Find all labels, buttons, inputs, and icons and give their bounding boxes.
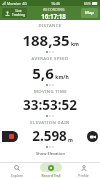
staticText: ELEVATION GAIN [30, 120, 70, 126]
staticText: 4G [22, 1, 27, 6]
button[interactable]: Profile [67, 163, 100, 178]
staticText: 16:17:18 [41, 12, 66, 20]
staticText: 5,6 [32, 63, 54, 83]
staticText: m [68, 137, 73, 144]
button[interactable]: Take photo [87, 131, 98, 142]
button[interactable]: Map [81, 8, 98, 18]
staticText: Tracking [12, 13, 25, 17]
staticText: Live [15, 9, 22, 13]
staticText: Record Trail [41, 173, 61, 178]
staticText: km [71, 41, 79, 48]
staticText: AVERAGE SPEED [31, 56, 69, 62]
staticText: Explore [11, 173, 23, 178]
button[interactable]: Show Elevation [34, 150, 67, 157]
staticText: RECORDING [43, 7, 65, 12]
button[interactable]: Stop recording [2, 131, 18, 142]
button[interactable]: Live [2, 8, 27, 18]
staticText: Profile [78, 173, 89, 178]
staticText: km/h [55, 74, 69, 81]
staticText: MOVING TIME [34, 89, 67, 95]
staticText: 65% [84, 1, 91, 6]
staticText: DISTANCE [38, 23, 62, 29]
staticText: 16:46 [51, 1, 60, 6]
staticText: Show Elevation [36, 151, 65, 156]
staticText: 33:53:52 [23, 96, 77, 114]
button[interactable]: Record Trail [34, 163, 67, 178]
button[interactable]: Explore [0, 163, 34, 178]
staticText: Monster [7, 1, 21, 6]
staticText: 188,35 [22, 30, 70, 50]
staticText: 2.598 [32, 127, 67, 145]
staticText: Map [85, 10, 94, 16]
